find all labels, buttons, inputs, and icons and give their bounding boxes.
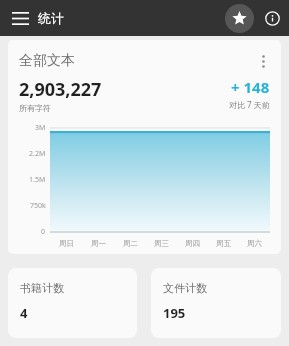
button[interactable]: 全部文本 [8, 40, 281, 254]
staticText: 书籍计数 [20, 281, 64, 295]
staticText: 4 [20, 304, 28, 322]
staticText: 周日 [59, 239, 74, 248]
staticText: 周三 [154, 239, 169, 248]
staticText: 周一 [91, 239, 106, 248]
button[interactable]: Info [258, 4, 286, 32]
staticText: 对比 7 天前 [229, 99, 270, 110]
button[interactable]: More options [253, 51, 273, 71]
staticText: 统计 [38, 10, 64, 26]
staticText: 1.5M [29, 175, 46, 184]
staticText: 周五 [216, 239, 231, 248]
staticText: 文件计数 [163, 281, 207, 295]
button[interactable]: 书籍计数 [8, 268, 137, 338]
staticText: 195 [163, 304, 186, 322]
staticText: 3M [35, 123, 46, 132]
button[interactable]: Open navigation menu [6, 4, 34, 32]
staticText: 周四 [185, 239, 200, 248]
staticText: 所有字符 [19, 103, 51, 113]
staticText: + 148 [231, 77, 270, 97]
staticText: 2,903,227 [19, 77, 102, 102]
button[interactable]: Favorite [225, 4, 254, 33]
button[interactable]: 文件计数 [151, 268, 281, 338]
staticText: 2.2M [29, 149, 46, 158]
staticText: 750k [30, 201, 46, 210]
staticText: 全部文本 [19, 52, 75, 70]
staticText: 0 [41, 227, 46, 236]
staticText: 周六 [247, 239, 262, 248]
staticText: 周二 [123, 239, 138, 248]
